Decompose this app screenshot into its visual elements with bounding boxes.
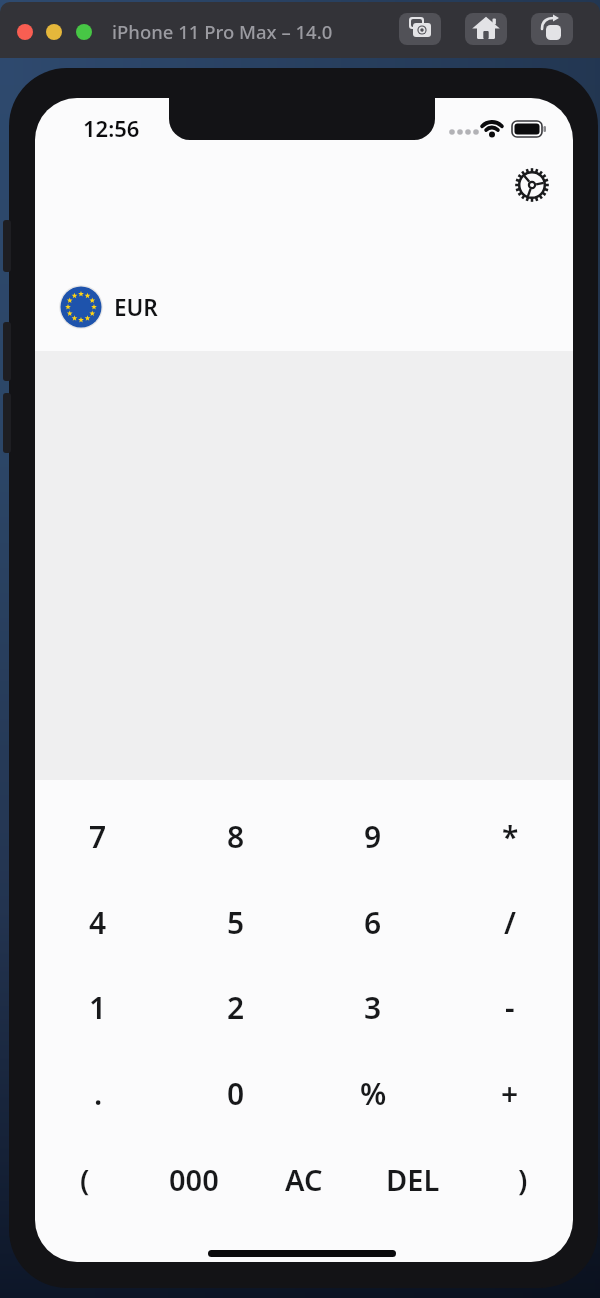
button[interactable] <box>55 277 185 337</box>
staticText: / <box>504 902 516 943</box>
button[interactable]: 3 <box>310 968 436 1046</box>
staticText: 12:56 <box>83 113 140 143</box>
staticText: + <box>501 1073 519 1114</box>
button[interactable]: 000 <box>142 1140 246 1218</box>
button[interactable]: 9 <box>310 797 436 875</box>
button[interactable]: 2 <box>173 968 299 1046</box>
button[interactable] <box>531 13 573 45</box>
button[interactable] <box>465 13 507 45</box>
staticText: AC <box>285 1160 323 1199</box>
staticText: ) <box>518 1160 528 1199</box>
button[interactable]: ) <box>471 1140 575 1218</box>
button[interactable]: 1 <box>35 968 161 1046</box>
staticText: 9 <box>364 816 382 857</box>
staticText: iPhone 11 Pro Max – 14.0 <box>112 19 333 44</box>
button[interactable]: AC <box>252 1140 356 1218</box>
staticText: 6 <box>364 902 382 943</box>
staticText: 000 <box>169 1160 219 1199</box>
staticText: 3 <box>364 987 382 1028</box>
staticText: 2 <box>227 987 245 1028</box>
button[interactable]: 4 <box>35 883 161 961</box>
button[interactable]: 8 <box>173 797 299 875</box>
button[interactable]: DEL <box>361 1140 465 1218</box>
staticText: 1 <box>89 987 107 1028</box>
button[interactable] <box>512 165 552 205</box>
button[interactable] <box>76 24 92 40</box>
staticText: % <box>360 1073 387 1114</box>
button[interactable]: 0 <box>173 1054 299 1132</box>
staticText: 0 <box>227 1073 245 1114</box>
button[interactable] <box>17 24 33 40</box>
button[interactable]: + <box>447 1054 573 1132</box>
staticText: - <box>505 987 515 1028</box>
staticText: EUR <box>114 292 158 323</box>
button[interactable]: 6 <box>310 883 436 961</box>
staticText: 8 <box>227 816 245 857</box>
staticText: ( <box>80 1160 90 1199</box>
staticText: 5 <box>227 902 245 943</box>
staticText: 7 <box>89 816 107 857</box>
button[interactable] <box>399 13 441 45</box>
button[interactable]: % <box>310 1054 436 1132</box>
button[interactable]: 5 <box>173 883 299 961</box>
button[interactable]: ( <box>33 1140 137 1218</box>
staticText: DEL <box>386 1160 440 1199</box>
staticText: . <box>94 1073 103 1114</box>
button[interactable]: - <box>447 968 573 1046</box>
button[interactable]: . <box>35 1054 161 1132</box>
staticText: * <box>502 816 519 857</box>
button[interactable]: * <box>447 797 573 875</box>
button[interactable]: / <box>447 883 573 961</box>
button[interactable] <box>46 24 62 40</box>
staticText: 4 <box>89 902 107 943</box>
button[interactable]: 7 <box>35 797 161 875</box>
